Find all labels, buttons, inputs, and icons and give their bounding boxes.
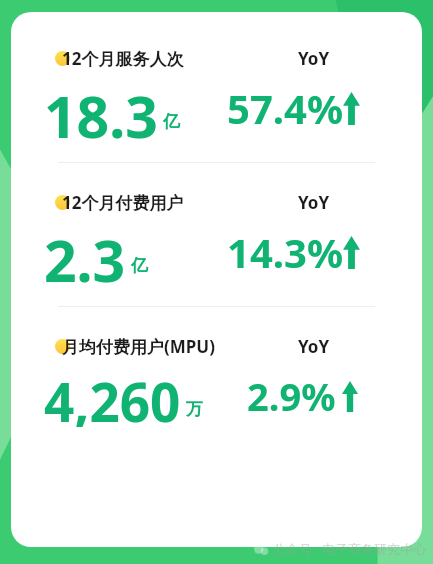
staticText: YoY [298, 47, 330, 70]
button[interactable]: 公众号 电子商务研究中心 [253, 540, 427, 558]
staticText: 18.3 [44, 77, 158, 139]
staticText: 12个月服务人次 [62, 47, 184, 70]
staticText: YoY [298, 191, 330, 214]
other: 上升 [342, 381, 358, 412]
staticText: 2.3 [44, 221, 126, 283]
staticText: 亿 [163, 111, 180, 132]
button[interactable]: 12个月付费用户 [11, 189, 422, 283]
staticText: 公众号 · 电子商务研究中心 [273, 540, 427, 558]
staticText: 14.3% [227, 225, 343, 279]
button[interactable]: 月均付费用户(MPU) [11, 333, 422, 427]
staticText: 12个月付费用户 [62, 191, 184, 214]
other: 上升 [343, 236, 360, 269]
staticText: 万 [186, 399, 203, 420]
staticText: 4,260 [44, 365, 181, 427]
staticText: 2.9% [247, 370, 336, 422]
staticText: 月均付费用户(MPU) [62, 335, 215, 358]
staticText: YoY [298, 335, 330, 358]
staticText: 亿 [131, 255, 148, 276]
other: 上升 [343, 92, 360, 125]
staticText: 57.4% [227, 81, 343, 135]
button[interactable]: 12个月服务人次 [11, 45, 422, 139]
